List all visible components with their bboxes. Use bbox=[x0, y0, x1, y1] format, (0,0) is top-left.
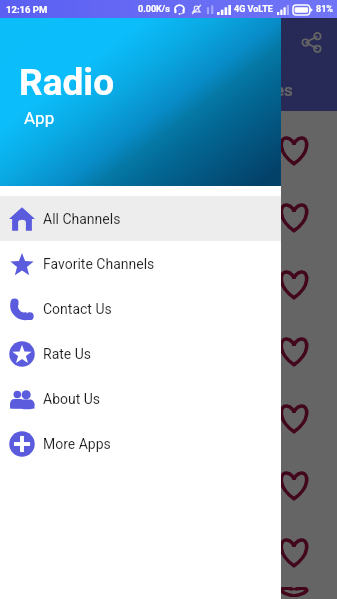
staticText: 12:16 PM bbox=[6, 4, 48, 15]
button[interactable]: Favorite bbox=[277, 468, 311, 502]
button[interactable]: Favorite bbox=[277, 133, 311, 167]
button[interactable]: Favorite bbox=[277, 334, 311, 368]
button[interactable]: Favorite bbox=[277, 267, 311, 301]
staticText: Rate Us bbox=[43, 346, 92, 362]
staticText: Radio bbox=[19, 61, 115, 104]
button[interactable]: More Apps bbox=[0, 421, 281, 466]
button[interactable]: Favorite bbox=[277, 587, 311, 597]
staticText: All Channels bbox=[43, 211, 121, 227]
button[interactable]: Share bbox=[293, 24, 329, 60]
button[interactable]: Favorite bbox=[277, 200, 311, 234]
button[interactable]: Rate Us bbox=[0, 331, 281, 376]
staticText: 4G VoLTE bbox=[234, 4, 273, 15]
staticText: Channel Name bbox=[76, 209, 168, 225]
button[interactable]: Channel Name bbox=[6, 520, 331, 583]
staticText: Contact Us bbox=[43, 301, 112, 317]
staticText: Channel Name bbox=[76, 343, 168, 359]
button[interactable]: About Us bbox=[0, 376, 281, 421]
staticText: Channel Name bbox=[76, 142, 168, 158]
staticText: Favorite Channels bbox=[43, 256, 155, 272]
button[interactable]: Channel Name bbox=[6, 386, 331, 449]
button[interactable]: Channel Name bbox=[6, 453, 331, 516]
button[interactable]: Channel Name bbox=[6, 252, 331, 315]
staticText: More Apps bbox=[43, 436, 111, 452]
button[interactable]: Favorite bbox=[277, 535, 311, 569]
button[interactable]: Contact Us bbox=[0, 286, 281, 331]
staticText: About Us bbox=[43, 391, 101, 407]
button[interactable]: All Channels bbox=[0, 196, 281, 241]
staticText: 0.00K/s bbox=[138, 4, 170, 15]
staticText: 81% bbox=[316, 4, 333, 15]
button[interactable]: Channel Name bbox=[6, 587, 331, 597]
button[interactable]: Channel Name bbox=[6, 185, 331, 248]
staticText: App bbox=[24, 108, 55, 128]
button[interactable]: Channel Name bbox=[6, 118, 331, 181]
button[interactable]: Channel Name bbox=[6, 319, 331, 382]
button[interactable]: Favorite bbox=[277, 401, 311, 435]
button[interactable]: Favorite Channels bbox=[0, 241, 281, 286]
staticText: All the radio channels and favourites bbox=[16, 80, 293, 100]
